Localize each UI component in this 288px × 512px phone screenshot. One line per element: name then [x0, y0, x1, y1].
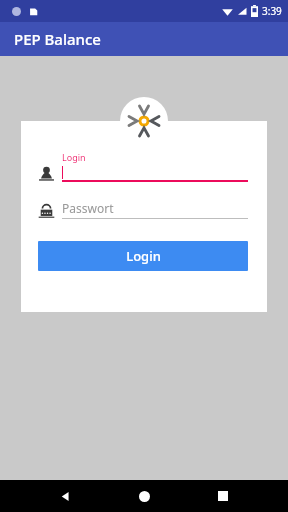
staticText: Login	[126, 247, 161, 265]
button[interactable]: Login	[38, 151, 248, 182]
button[interactable]: Home	[131, 483, 157, 509]
button[interactable]: Back	[52, 483, 78, 509]
other: App logo	[120, 97, 168, 145]
button[interactable]: Passwort	[38, 200, 248, 219]
staticText: Passwort	[62, 200, 114, 216]
button[interactable]: Recent apps	[210, 483, 236, 509]
button[interactable]: Login	[38, 241, 248, 271]
staticText: 3:39	[262, 4, 282, 18]
staticText: PEP Balance	[14, 29, 101, 49]
staticText: Login	[62, 151, 86, 163]
